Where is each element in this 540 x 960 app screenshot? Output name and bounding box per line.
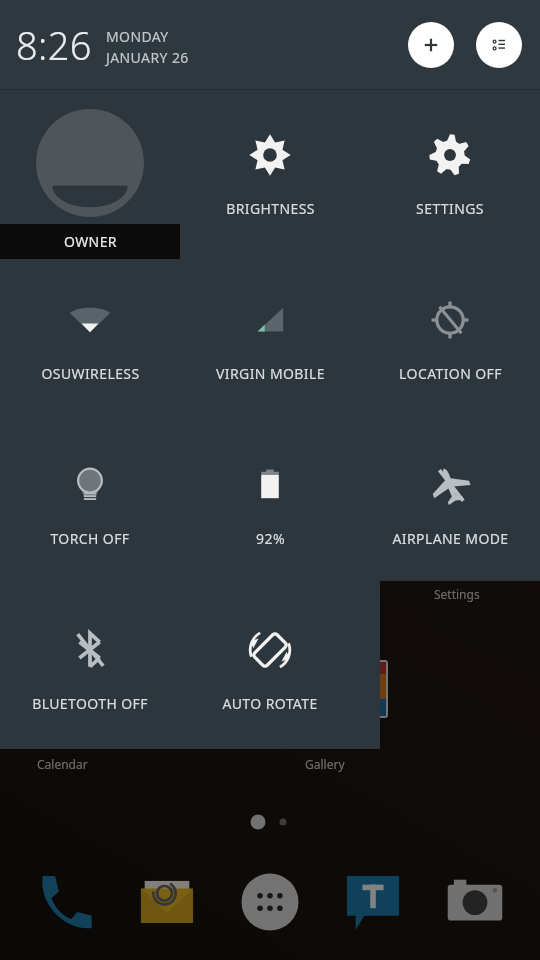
button[interactable]: Notifications list: [476, 22, 522, 68]
button[interactable]: Camera: [437, 864, 513, 940]
button[interactable]: SETTINGS: [360, 91, 540, 256]
button[interactable]: BRIGHTNESS: [180, 91, 360, 256]
button[interactable]: Apps: [232, 864, 308, 940]
button[interactable]: AUTO ROTATE: [180, 586, 360, 751]
staticText: Settings: [434, 586, 480, 602]
button[interactable]: AIRPLANE MODE: [360, 421, 540, 586]
button[interactable]: TORCH OFF: [0, 421, 180, 586]
staticText: JANUARY 26: [106, 48, 189, 67]
staticText: SETTINGS: [416, 199, 484, 218]
button[interactable]: Messaging: [335, 864, 411, 940]
button[interactable]: 92%: [180, 421, 360, 586]
button[interactable]: LOCATION OFF: [360, 256, 540, 421]
staticText: OWNER: [64, 232, 117, 251]
staticText: Calendar: [37, 756, 88, 772]
button[interactable]: OWNER: [0, 91, 180, 256]
staticText: AUTO ROTATE: [222, 694, 318, 713]
staticText: 92%: [256, 529, 285, 548]
button[interactable]: Add user: [408, 22, 454, 68]
staticText: 8:26: [16, 19, 92, 71]
staticText: LOCATION OFF: [399, 364, 502, 383]
button[interactable]: VIRGIN MOBILE: [180, 256, 360, 421]
staticText: BLUETOOTH OFF: [32, 694, 148, 713]
staticText: Gallery: [305, 756, 345, 772]
button[interactable]: Phone: [27, 864, 103, 940]
staticText: AIRPLANE MODE: [392, 529, 509, 548]
staticText: BRIGHTNESS: [226, 199, 315, 218]
staticText: MONDAY: [106, 27, 169, 46]
staticText: TORCH OFF: [50, 529, 130, 548]
button[interactable]: BLUETOOTH OFF: [0, 586, 180, 751]
button[interactable]: OSUWIRELESS: [0, 256, 180, 421]
button[interactable]: Email: [129, 864, 205, 940]
staticText: VIRGIN MOBILE: [216, 364, 325, 383]
staticText: OSUWIRELESS: [41, 364, 140, 383]
